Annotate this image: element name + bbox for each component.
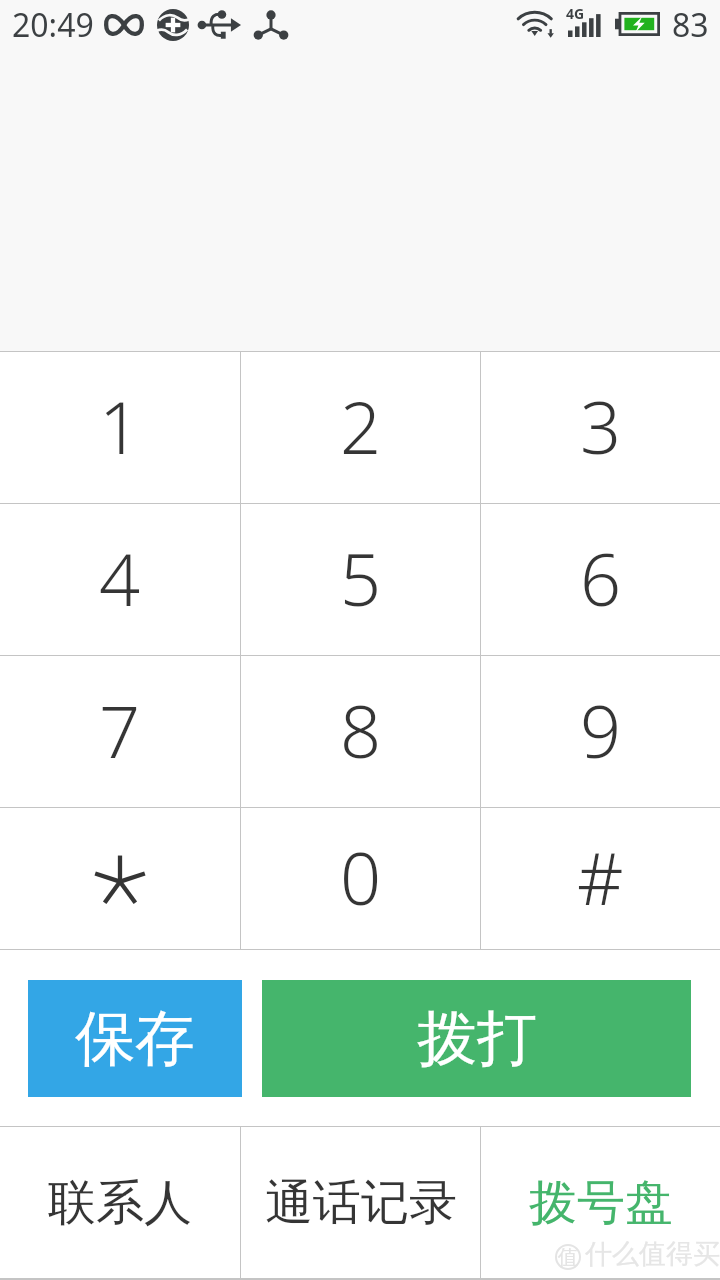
staticText: 4 [99,529,141,627]
button[interactable]: 4 [0,504,240,655]
button[interactable]: 1 [0,352,240,503]
button[interactable]: 2 [241,352,480,503]
button[interactable]: # [481,808,720,949]
staticText: 保存 [75,1001,195,1077]
staticText: 9 [580,681,622,779]
button[interactable]: 7 [0,656,240,807]
staticText: 0 [340,828,382,926]
staticText: 拨号盘 [529,1173,673,1233]
staticText: 2 [340,377,382,475]
button[interactable]: 8 [241,656,480,807]
button[interactable]: 9 [481,656,720,807]
staticText: 通话记录 [265,1173,457,1233]
staticText: # [577,828,624,926]
button[interactable]: 拨打 [262,980,691,1097]
other: Battery charging [615,12,660,36]
other: Wi-Fi [518,10,556,39]
staticText: 1 [99,377,141,475]
staticText: 拨打 [417,1001,537,1077]
staticText: 什么值得买 [585,1237,720,1271]
staticText: 3 [580,377,622,475]
other: Unlimited data [104,11,144,39]
staticText: 4G [566,4,585,23]
other: Star [96,856,144,901]
other: Share [252,10,290,40]
other: Sync [157,9,189,41]
staticText: 联系人 [48,1173,192,1233]
button[interactable]: Star [0,808,240,949]
staticText: 7 [99,681,141,779]
button[interactable]: 6 [481,504,720,655]
button[interactable]: 5 [241,504,480,655]
button[interactable]: 联系人 [0,1127,240,1278]
other: Mobile signal [568,11,604,37]
staticText: 5 [340,529,382,627]
staticText: 6 [580,529,622,627]
button[interactable]: 保存 [28,980,242,1097]
button[interactable]: 3 [481,352,720,503]
button[interactable]: 通话记录 [241,1127,480,1278]
staticText: 值 [558,1245,578,1270]
staticText: 8 [340,681,382,779]
staticText: 20:49 [12,3,94,47]
button[interactable]: 0 [241,808,480,949]
staticText: 83 [672,3,709,47]
button[interactable]: 拨号盘 [481,1127,720,1278]
other: USB connected [199,11,241,39]
